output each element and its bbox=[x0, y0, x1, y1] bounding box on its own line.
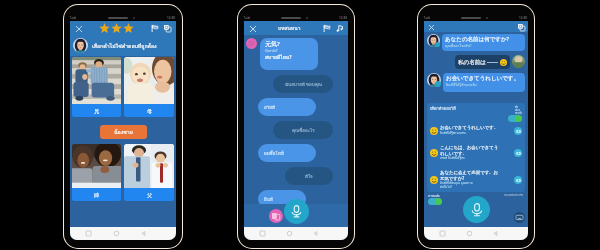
button[interactable]: Cards bbox=[162, 23, 173, 34]
staticText: あなたに会えて光栄です。お 元気ですか? bbox=[440, 170, 499, 181]
button[interactable]: Recents bbox=[438, 229, 447, 238]
staticText: ฟัง เสียง อีกครั้ง bbox=[515, 105, 522, 115]
button[interactable]: Record bbox=[463, 196, 490, 223]
staticText: あなたの名前は何ですか? bbox=[445, 35, 509, 43]
button[interactable]: ยินดี bbox=[258, 190, 306, 208]
staticText: ยินดี bbox=[264, 196, 273, 203]
staticText: บทสนทนา bbox=[278, 24, 301, 32]
staticText: こんにちは、お会いできてう れしいです。 bbox=[440, 145, 499, 156]
button[interactable]: 姉 bbox=[72, 144, 121, 201]
staticText: ยินดีที่ได้รู้จักนะครับ bbox=[446, 82, 477, 88]
staticText: ยินดีที่ได้รู้จักนะครับ bbox=[440, 131, 466, 136]
button[interactable]: ฉันสบายดี ขอบคุณ bbox=[273, 75, 333, 93]
staticText: คุณชื่ออะไรครับ? bbox=[445, 43, 472, 49]
button[interactable]: Audio bbox=[334, 23, 345, 34]
staticText: 私の名前は bbox=[458, 59, 486, 66]
button[interactable]: 私の名前は bbox=[455, 55, 510, 69]
staticText: お会いできてうれしいです。 bbox=[446, 75, 519, 82]
staticText: 兄 bbox=[94, 108, 99, 114]
staticText: 12:30 bbox=[339, 16, 348, 20]
button[interactable]: こんにちは、お会いできてう れしいです。 bbox=[430, 145, 522, 161]
button[interactable]: Keyboard bbox=[514, 212, 525, 223]
staticText: ผมชื่อโทนี่ bbox=[264, 150, 284, 157]
staticText: ไม่มี bbox=[244, 15, 250, 20]
staticText: 元気? bbox=[265, 40, 280, 48]
staticText: เลือกคำตอบให้ bbox=[430, 105, 456, 111]
button[interactable]: น้องชาย bbox=[100, 125, 147, 139]
staticText: สวัสดี bbox=[264, 104, 275, 111]
button[interactable]: คุณชื่ออะไร bbox=[273, 121, 333, 139]
staticText: 12:30 bbox=[519, 16, 528, 20]
button[interactable]: Recents bbox=[84, 229, 93, 238]
staticText: น้องชาย bbox=[114, 128, 133, 136]
button[interactable]: 元気? bbox=[260, 38, 318, 70]
staticText: ช่วยเหลือเกี่ยวกับ bbox=[504, 193, 524, 197]
button[interactable]: Home bbox=[465, 229, 474, 238]
button[interactable]: Close bbox=[426, 22, 436, 32]
staticText: สวัสดี ยินดีที่ได้รู้จัก bbox=[440, 156, 465, 161]
button[interactable]: Flag bbox=[321, 23, 332, 34]
button[interactable]: Close bbox=[73, 23, 84, 34]
staticText: คุณชื่ออะไร bbox=[292, 127, 315, 134]
staticText: ไม่มี bbox=[424, 15, 430, 20]
button[interactable]: Back bbox=[311, 229, 320, 238]
button[interactable]: สวัสดี bbox=[258, 98, 316, 116]
staticText: お会いできてうれしいです。 bbox=[440, 125, 499, 131]
button[interactable]: Cards bbox=[516, 22, 526, 32]
button[interactable]: Home bbox=[112, 229, 121, 238]
button[interactable]: Translate bbox=[269, 209, 283, 223]
button[interactable]: 父 bbox=[124, 144, 174, 201]
staticText: เลือกคำไม่ใช่คำตอบที่ถูกต้อง bbox=[92, 42, 157, 50]
button[interactable]: ผมชื่อโทนี่ bbox=[258, 144, 316, 162]
staticText: ดีใจ bbox=[305, 173, 313, 180]
staticText: สบายดีไหม? bbox=[265, 53, 292, 61]
button[interactable]: Toggle translation bbox=[428, 198, 442, 205]
button[interactable]: 兄 bbox=[72, 57, 121, 117]
staticText: 父 bbox=[147, 192, 152, 198]
staticText: ไม่มี bbox=[70, 15, 76, 20]
button[interactable]: あなたの名前は何ですか? bbox=[442, 34, 525, 51]
button[interactable]: ดีใจ bbox=[285, 167, 333, 185]
button[interactable]: Flag bbox=[149, 23, 160, 34]
button[interactable]: Back bbox=[139, 229, 148, 238]
button[interactable]: Close bbox=[247, 23, 258, 34]
button[interactable]: お会いできてうれしいです。 bbox=[443, 73, 525, 92]
staticText: การแปล bbox=[428, 193, 440, 198]
staticText: 姉 bbox=[94, 192, 99, 198]
button[interactable]: あなたに会えて光栄です。お 元気ですか? bbox=[430, 170, 522, 189]
staticText: 母 bbox=[147, 108, 152, 114]
button[interactable]: Record bbox=[284, 199, 309, 224]
button[interactable]: Back bbox=[491, 229, 500, 238]
staticText: ยินดีที่ได้พบคุณ คุณสบาย ดีหรือไม่? bbox=[440, 181, 473, 189]
button[interactable]: 母 bbox=[124, 57, 174, 117]
staticText: ฉันสบายดี ขอบคุณ bbox=[285, 81, 322, 88]
button[interactable]: Home bbox=[285, 229, 294, 238]
staticText: Genki? bbox=[265, 48, 278, 53]
button[interactable]: Recents bbox=[258, 229, 267, 238]
staticText: 12:30 bbox=[167, 16, 176, 20]
button[interactable]: お会いできてうれしいです。 bbox=[430, 125, 522, 136]
button[interactable]: Toggle audio bbox=[508, 115, 522, 122]
